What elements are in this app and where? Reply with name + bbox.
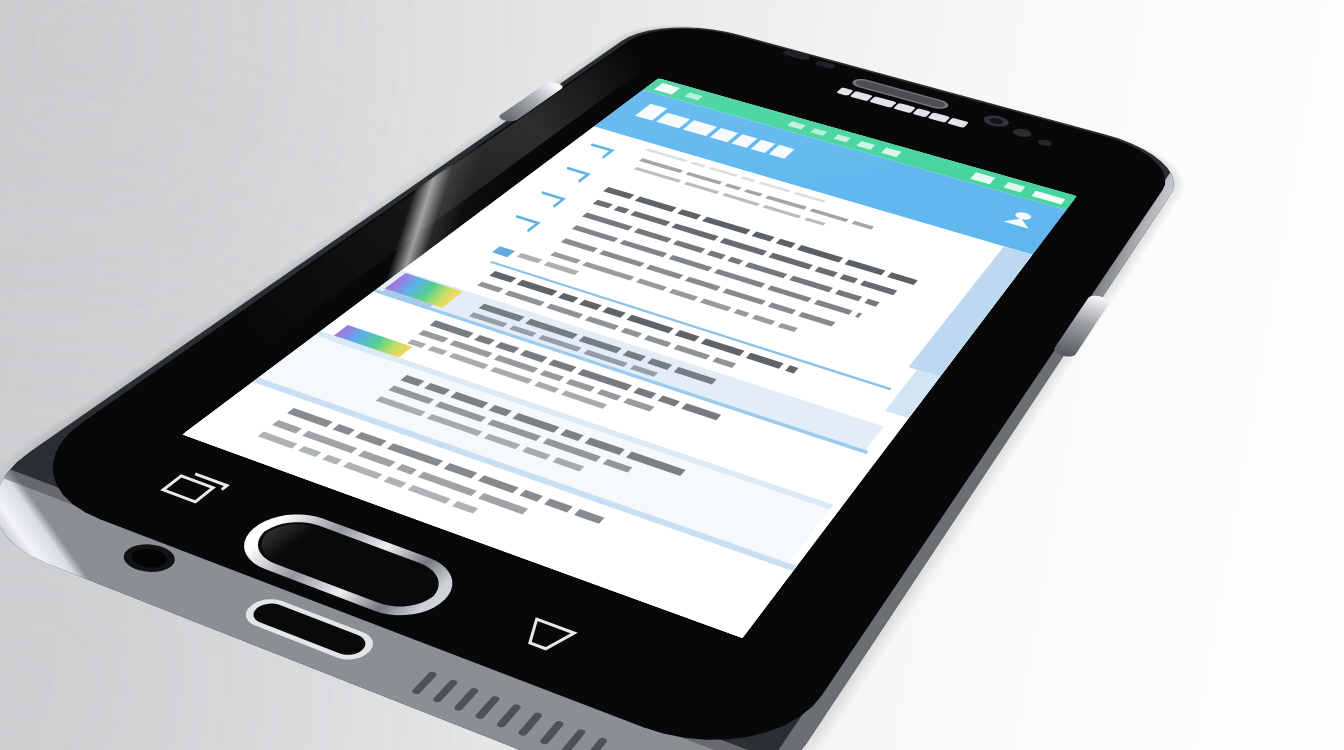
button[interactable]: Phone showing Summary app screen [0, 0, 1344, 750]
